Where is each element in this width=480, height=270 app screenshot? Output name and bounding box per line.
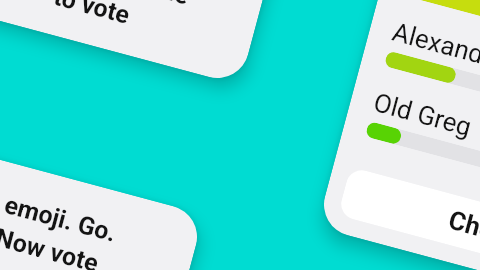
staticText: Choose bbox=[445, 205, 480, 257]
button[interactable] bbox=[0, 131, 204, 270]
staticText: emoji. Go. Now vote bbox=[0, 190, 120, 270]
button[interactable] bbox=[0, 0, 304, 85]
staticText: Old Greg bbox=[370, 87, 475, 142]
staticText: Tap a name to vote bbox=[51, 0, 193, 43]
button[interactable]: Choose bbox=[338, 167, 480, 270]
staticText: Alexander bbox=[389, 17, 480, 76]
